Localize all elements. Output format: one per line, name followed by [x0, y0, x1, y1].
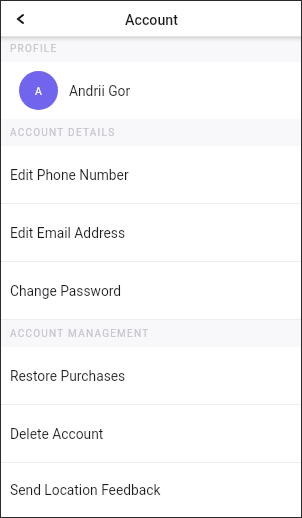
button[interactable]: A [1, 62, 301, 119]
button[interactable]: Change Password [1, 262, 301, 320]
staticText: A [35, 85, 42, 97]
staticText: Edit Phone Number [10, 167, 129, 183]
button[interactable]: Send Location Feedback [1, 463, 301, 517]
staticText: Delete Account [10, 426, 104, 442]
staticText: Change Password [10, 283, 122, 299]
staticText: Restore Purchases [10, 368, 126, 384]
staticText: Andrii Gor [69, 83, 131, 99]
button[interactable]: Restore Purchases [1, 347, 301, 405]
staticText: ACCOUNT MANAGEMENT [10, 328, 150, 340]
staticText: Account [125, 12, 178, 29]
button[interactable]: Edit Phone Number [1, 146, 301, 204]
staticText: ACCOUNT DETAILS [10, 127, 116, 139]
button[interactable]: Delete Account [1, 405, 301, 463]
button[interactable]: Edit Email Address [1, 204, 301, 262]
staticText: Edit Email Address [10, 225, 126, 241]
staticText: Send Location Feedback [10, 482, 161, 498]
button[interactable]: Back [6, 2, 35, 36]
staticText: PROFILE [10, 43, 58, 55]
